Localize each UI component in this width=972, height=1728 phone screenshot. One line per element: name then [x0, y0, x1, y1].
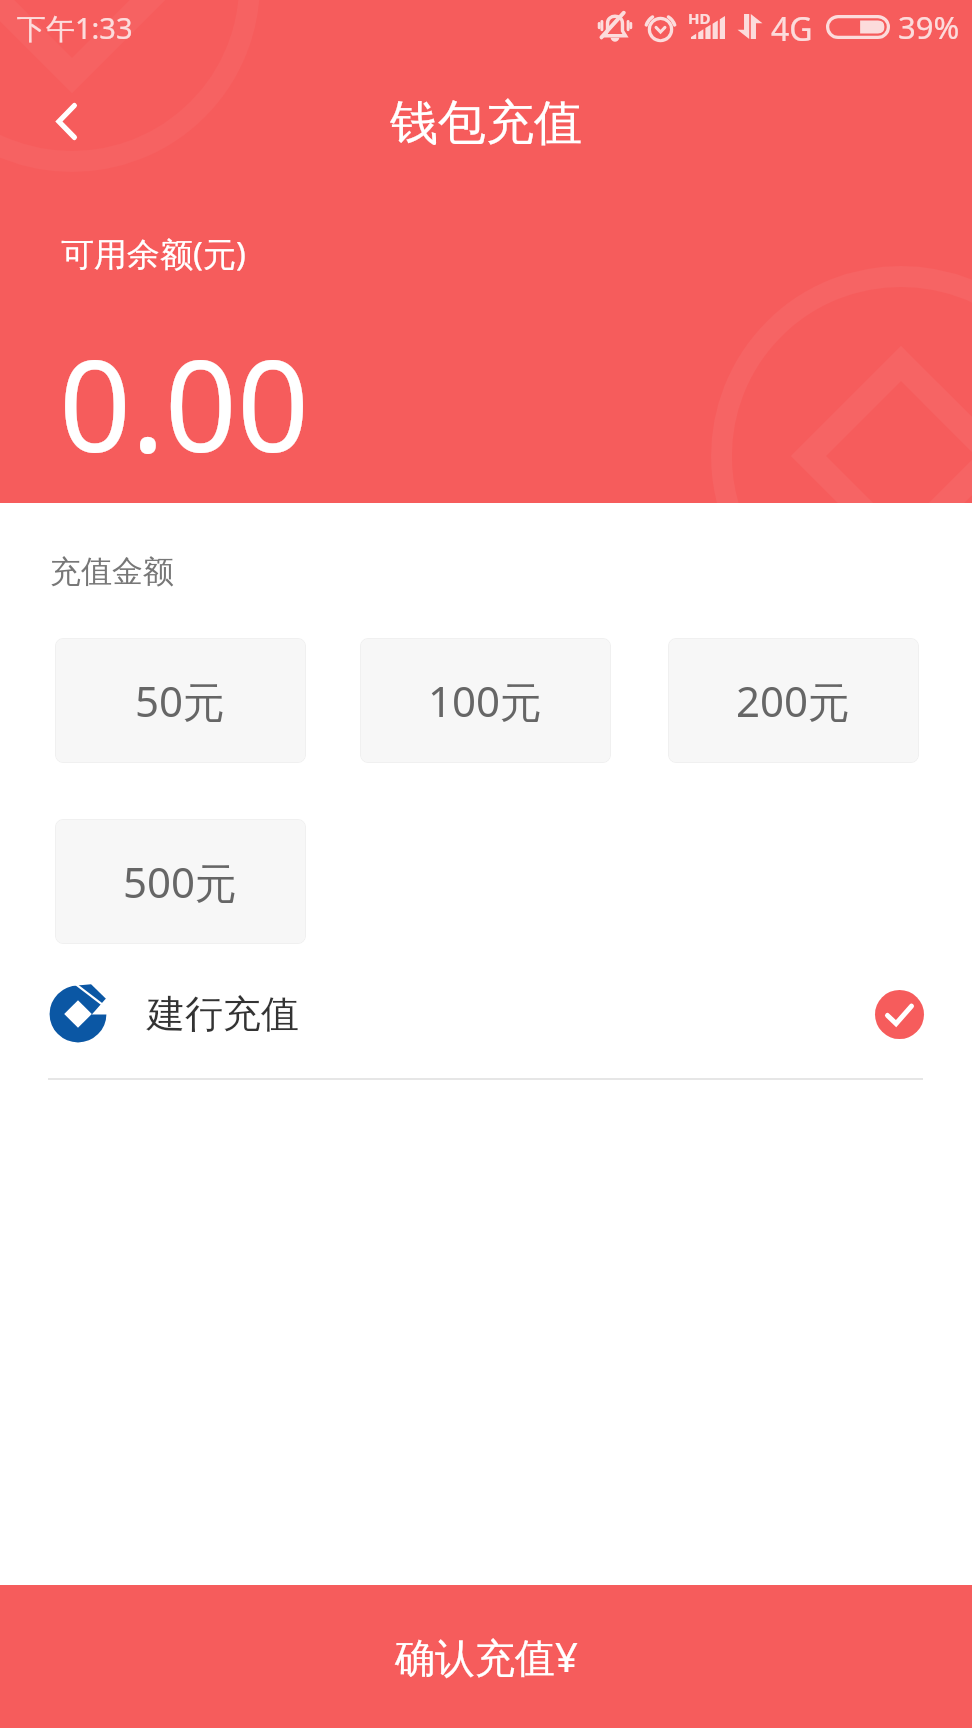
staticText: 下午1:33	[17, 8, 133, 48]
staticText: 100元	[428, 672, 543, 729]
staticText: 500元	[123, 853, 238, 910]
staticText: 充值金额	[50, 552, 174, 591]
button[interactable]: Back	[0, 70, 118, 175]
button[interactable]: 50元	[55, 638, 306, 763]
staticText: HD	[688, 8, 711, 28]
staticText: 39%	[898, 6, 960, 48]
staticText: 4G	[771, 7, 813, 51]
staticText: 钱包充值	[390, 93, 582, 153]
staticText: 0.00	[59, 317, 309, 489]
staticText: 建行充值	[147, 990, 299, 1038]
button[interactable]: 建行充值	[0, 944, 972, 1078]
staticText: 确认充值¥	[395, 1629, 578, 1684]
staticText: 200元	[736, 672, 851, 729]
button[interactable]: 200元	[668, 638, 919, 763]
staticText: 可用余额(元)	[61, 231, 246, 276]
button[interactable]: 100元	[360, 638, 611, 763]
button[interactable]: 确认充值¥	[0, 1585, 972, 1728]
button[interactable]: 500元	[55, 819, 306, 944]
staticText: 50元	[135, 672, 226, 729]
